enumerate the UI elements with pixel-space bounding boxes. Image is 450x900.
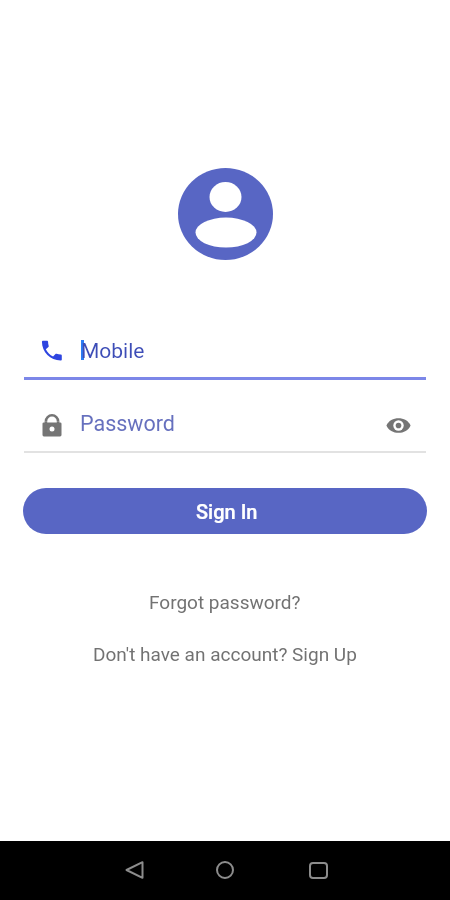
button[interactable]: Show password — [382, 409, 414, 441]
button[interactable]: Back — [112, 848, 156, 892]
button[interactable]: Forgot password? — [137, 586, 313, 618]
button[interactable]: Recent apps — [296, 848, 340, 892]
button[interactable]: Don't have an account? Sign Up — [81, 638, 369, 670]
button[interactable]: Mobile number field — [0, 330, 450, 380]
button[interactable]: Password field — [0, 404, 450, 453]
staticText: Forgot password? — [149, 591, 301, 613]
staticText: Sign In — [196, 500, 258, 523]
staticText: Mobile — [81, 339, 145, 364]
staticText: Don't have an account? Sign Up — [93, 643, 357, 665]
button[interactable]: Home — [203, 848, 247, 892]
staticText: Password — [80, 411, 175, 436]
button[interactable]: Sign In — [23, 488, 427, 534]
